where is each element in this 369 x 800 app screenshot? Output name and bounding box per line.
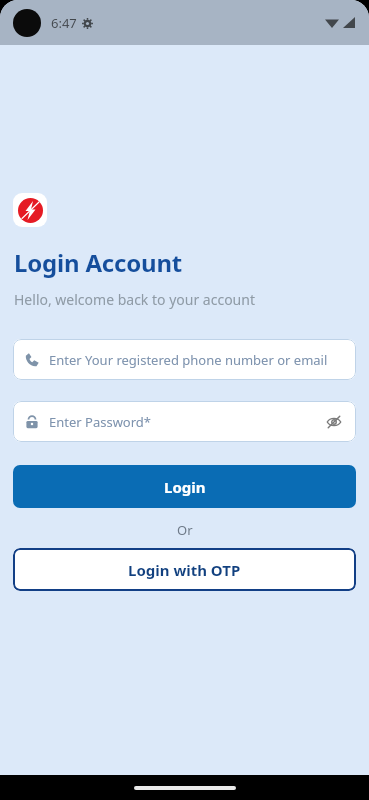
staticText: 6:47 bbox=[51, 14, 77, 32]
button[interactable]: Show password bbox=[324, 412, 344, 432]
button[interactable]: Enter Password* bbox=[13, 401, 356, 442]
staticText: Login bbox=[164, 477, 206, 497]
staticText: Login with OTP bbox=[128, 560, 241, 580]
button[interactable]: Enter Your registered phone number or em… bbox=[13, 339, 356, 380]
staticText: Hello, welcome back to your account bbox=[14, 290, 255, 309]
button[interactable]: Login with OTP bbox=[13, 548, 356, 591]
staticText: Or bbox=[177, 521, 193, 539]
button[interactable]: Login bbox=[13, 465, 356, 508]
staticText: Login Account bbox=[14, 246, 182, 279]
staticText: Enter Password* bbox=[49, 413, 151, 431]
staticText: Enter Your registered phone number or em… bbox=[49, 351, 328, 369]
